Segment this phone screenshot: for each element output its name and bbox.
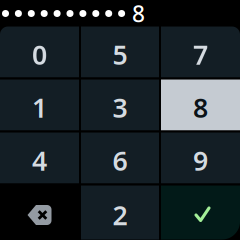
staticText: 4 [32,143,47,178]
button[interactable]: 2 [81,185,159,239]
button[interactable]: 4 [0,132,79,183]
button[interactable]: 6 [81,132,159,183]
button[interactable]: Confirm [161,185,240,239]
button[interactable]: 1 [0,79,79,130]
staticText: 2 [112,197,127,233]
button[interactable]: 8 [161,79,240,130]
button[interactable]: Delete [0,185,79,239]
button[interactable]: 3 [81,79,159,130]
button[interactable]: 0 [0,26,79,77]
staticText: 9 [193,143,208,178]
staticText: 8 [132,0,145,28]
button[interactable]: 9 [161,132,240,183]
staticText: 0 [32,37,47,72]
staticText: 7 [193,37,208,72]
staticText: 1 [32,90,47,125]
button[interactable]: 5 [81,26,159,77]
staticText: 5 [112,37,127,72]
button[interactable]: 7 [161,26,240,77]
staticText: 8 [193,90,208,125]
staticText: 6 [112,143,127,178]
staticText: 3 [112,90,127,125]
